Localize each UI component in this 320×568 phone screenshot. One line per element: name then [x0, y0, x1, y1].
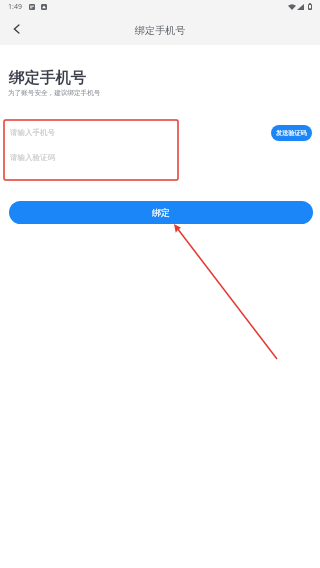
staticText: 请输入手机号: [10, 128, 55, 137]
staticText: 绑定: [152, 208, 170, 219]
button[interactable]: 请输入手机号: [0, 120, 265, 145]
staticText: 发送验证码: [276, 129, 307, 137]
staticText: 绑定手机号: [9, 68, 86, 87]
staticText: 为了账号安全，建议绑定手机号: [8, 89, 101, 97]
button[interactable]: 绑定: [9, 201, 313, 224]
button[interactable]: 发送验证码: [271, 125, 312, 141]
staticText: 1:49: [8, 2, 22, 12]
button[interactable]: Back: [2, 14, 31, 43]
staticText: 绑定手机号: [0, 24, 320, 37]
staticText: 请输入验证码: [10, 153, 55, 162]
button[interactable]: 请输入验证码: [0, 145, 265, 170]
